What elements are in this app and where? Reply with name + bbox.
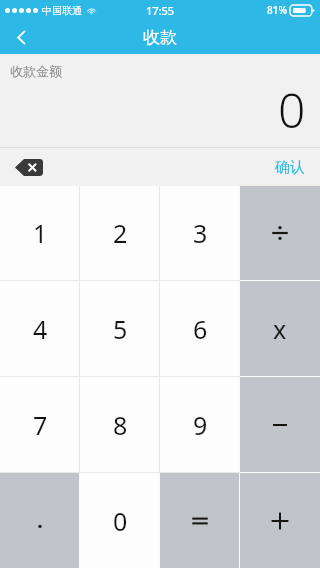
button[interactable]: 2 [80, 186, 160, 280]
staticText: 2 [113, 216, 128, 250]
button[interactable]: 6 [160, 281, 240, 376]
button[interactable]: 5 [80, 281, 160, 376]
staticText: 0 [278, 77, 306, 142]
staticText: 8 [113, 408, 128, 442]
button[interactable]: + [240, 473, 320, 568]
staticText: x [273, 312, 287, 346]
staticText: 17:55 [146, 3, 175, 18]
staticText: 中国联通 [42, 4, 82, 17]
button[interactable]: 4 [0, 281, 80, 376]
staticText: 确认 [275, 158, 305, 177]
staticText: 6 [193, 312, 208, 346]
staticText: 收款金额 [10, 63, 62, 79]
button[interactable]: x [240, 281, 320, 376]
staticText: 81% [267, 3, 287, 17]
button[interactable]: 9 [160, 377, 240, 472]
button[interactable]: 1 [0, 186, 80, 280]
button[interactable]: Backspace [8, 153, 50, 181]
staticText: 9 [193, 408, 208, 442]
button[interactable]: 3 [160, 186, 240, 280]
button[interactable]: 0 [80, 473, 160, 568]
button[interactable]: ÷ [240, 186, 320, 280]
button[interactable]: 7 [0, 377, 80, 472]
staticText: 4 [33, 312, 48, 346]
staticText: 3 [193, 216, 208, 250]
button[interactable]: . [0, 473, 80, 568]
button[interactable]: 8 [80, 377, 160, 472]
staticText: 5 [113, 312, 128, 346]
button[interactable]: Back [0, 20, 42, 54]
button[interactable]: - [240, 377, 320, 472]
staticText: 7 [33, 408, 48, 442]
staticText: 收款 [143, 27, 177, 48]
staticText: 1 [33, 216, 48, 250]
button[interactable]: 确认 [260, 148, 320, 186]
button[interactable]: = [160, 473, 240, 568]
staticText: 0 [113, 504, 128, 538]
